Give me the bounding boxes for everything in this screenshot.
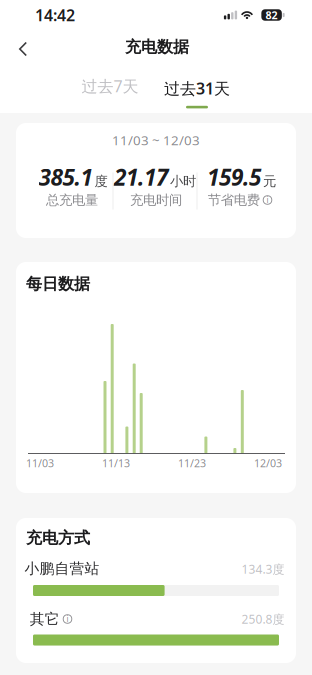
button[interactable]: Back (10, 32, 36, 65)
staticText: 11/03 (26, 456, 54, 470)
staticText: 节省电费 (208, 192, 260, 208)
staticText: i (66, 614, 68, 624)
staticText: 元 (263, 173, 276, 190)
staticText: 12/03 (254, 456, 282, 470)
staticText: 159.5 (207, 162, 261, 192)
staticText: 充电数据 (125, 37, 189, 57)
staticText: 134.3度 (241, 561, 284, 577)
staticText: 充电方式 (26, 528, 90, 548)
staticText: 总充电量 (46, 192, 98, 208)
button[interactable]: 节省电费说明 (263, 195, 272, 205)
staticText: 其它 (30, 610, 60, 628)
staticText: 250.8度 (241, 611, 284, 627)
staticText: 11/23 (178, 456, 206, 470)
staticText: 11/13 (102, 456, 130, 470)
button[interactable]: 其它说明 (63, 614, 72, 624)
staticText: 小鹏自营站 (24, 559, 99, 577)
staticText: 过去7天 (81, 75, 138, 97)
staticText: 11/03 ~ 12/03 (112, 131, 200, 149)
staticText: i (266, 195, 268, 205)
staticText: 385.1 (38, 162, 92, 192)
button[interactable]: 过去7天 (77, 69, 142, 103)
staticText: 14:42 (35, 4, 75, 26)
button[interactable]: 过去31天 (164, 78, 230, 108)
staticText: 过去31天 (164, 78, 230, 99)
staticText: 充电时间 (130, 192, 182, 208)
staticText: 度 (94, 173, 107, 190)
staticText: 82 (266, 8, 278, 22)
staticText: 小时 (170, 173, 196, 190)
staticText: 每日数据 (26, 274, 90, 294)
staticText: 21.17 (114, 162, 168, 192)
